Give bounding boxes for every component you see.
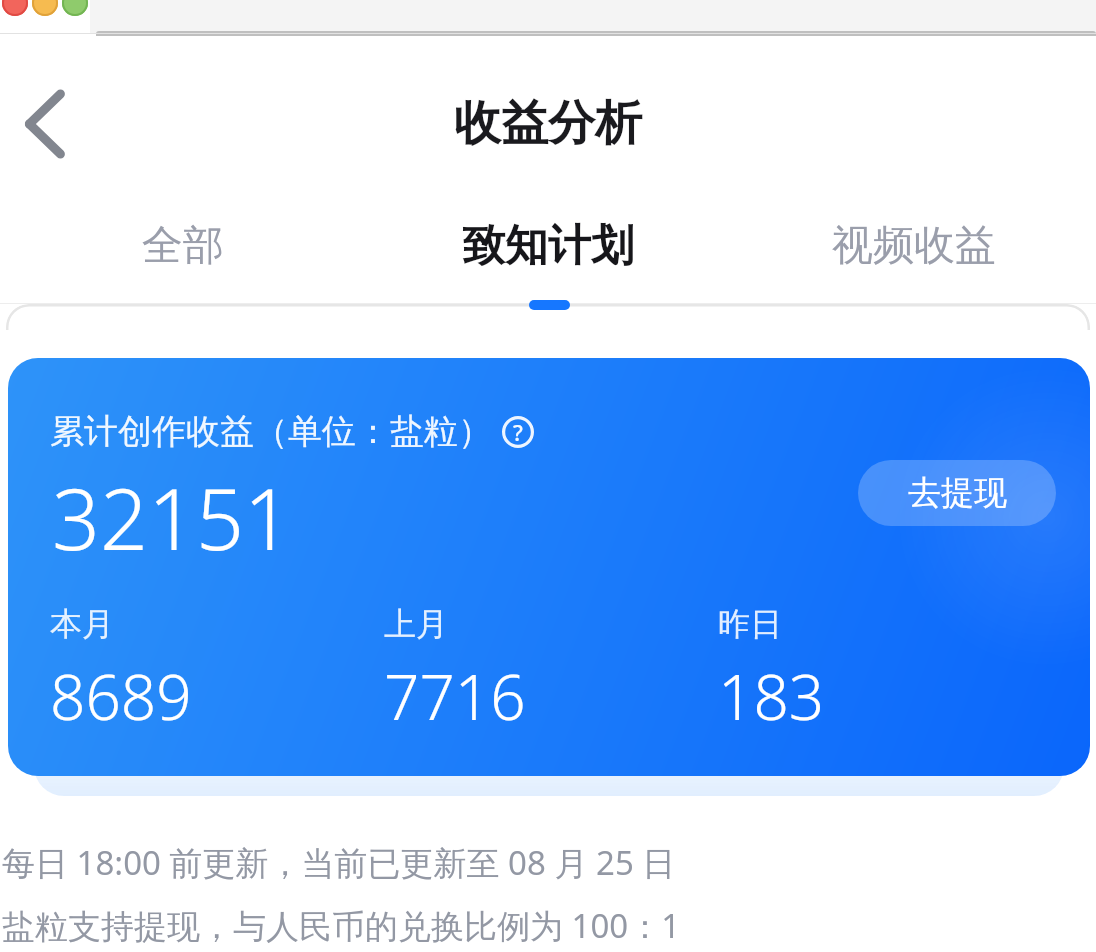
staticText: 183 bbox=[718, 654, 825, 738]
staticText: 全部 bbox=[142, 220, 224, 272]
staticText: 32151 bbox=[52, 460, 292, 574]
button[interactable]: 全部 bbox=[0, 196, 365, 296]
staticText: 去提现 bbox=[908, 472, 1007, 514]
staticText: 上月 bbox=[384, 604, 448, 644]
button[interactable]: 致知计划 bbox=[365, 196, 731, 296]
staticText: 累计创作收益（单位：盐粒） bbox=[50, 410, 492, 453]
staticText: 8689 bbox=[50, 654, 192, 738]
staticText: 本月 bbox=[50, 604, 114, 644]
button[interactable]: 去提现 bbox=[858, 460, 1056, 526]
staticText: 致知计划 bbox=[462, 219, 634, 273]
staticText: 7716 bbox=[384, 654, 526, 738]
staticText: 昨日 bbox=[718, 604, 782, 644]
staticText: 盐粒支持提现，与人民币的兑换比例为 100：1 bbox=[2, 903, 681, 948]
button[interactable]: Back bbox=[2, 76, 98, 172]
staticText: 视频收益 bbox=[832, 220, 996, 272]
button[interactable]: 视频收益 bbox=[731, 196, 1096, 296]
staticText: 收益分析 bbox=[0, 94, 1096, 153]
staticText: 每日 18:00 前更新，当前已更新至 08 月 25 日 bbox=[2, 840, 676, 885]
staticText: ? bbox=[513, 417, 523, 447]
button[interactable]: 累计创作收益（单位：盐粒） bbox=[8, 358, 1090, 776]
button[interactable]: 帮助说明 bbox=[498, 412, 538, 452]
